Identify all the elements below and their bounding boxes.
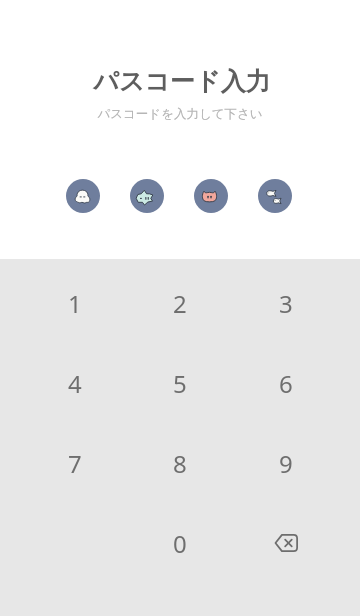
staticText: パスコード入力 [93, 66, 271, 97]
button[interactable]: 4 [22, 343, 127, 423]
staticText: 8 [173, 447, 187, 480]
button[interactable]: 0 [127, 503, 233, 583]
staticText: 5 [173, 367, 187, 400]
button[interactable]: 9 [233, 423, 339, 503]
staticText: 1 [68, 287, 82, 320]
staticText: 6 [279, 367, 293, 400]
button[interactable]: 2 [127, 263, 233, 343]
button[interactable]: Passcode character 3 [258, 179, 292, 213]
staticText: 2 [173, 287, 187, 320]
button[interactable]: Passcode character 0 [66, 179, 100, 213]
staticText: 3 [279, 287, 293, 320]
button[interactable]: Passcode character 1 [130, 179, 164, 213]
button[interactable]: Backspace [233, 503, 339, 583]
button[interactable]: 1 [22, 263, 127, 343]
button[interactable]: 3 [233, 263, 339, 343]
button[interactable]: 6 [233, 343, 339, 423]
button[interactable]: 8 [127, 423, 233, 503]
staticText: 7 [68, 447, 82, 480]
staticText: 4 [68, 367, 82, 400]
staticText: 9 [279, 447, 293, 480]
button[interactable]: Passcode character 2 [194, 179, 228, 213]
button[interactable]: 5 [127, 343, 233, 423]
button[interactable]: 7 [22, 423, 127, 503]
staticText: 0 [173, 527, 187, 560]
staticText: パスコードを入力して下さい [97, 106, 263, 122]
